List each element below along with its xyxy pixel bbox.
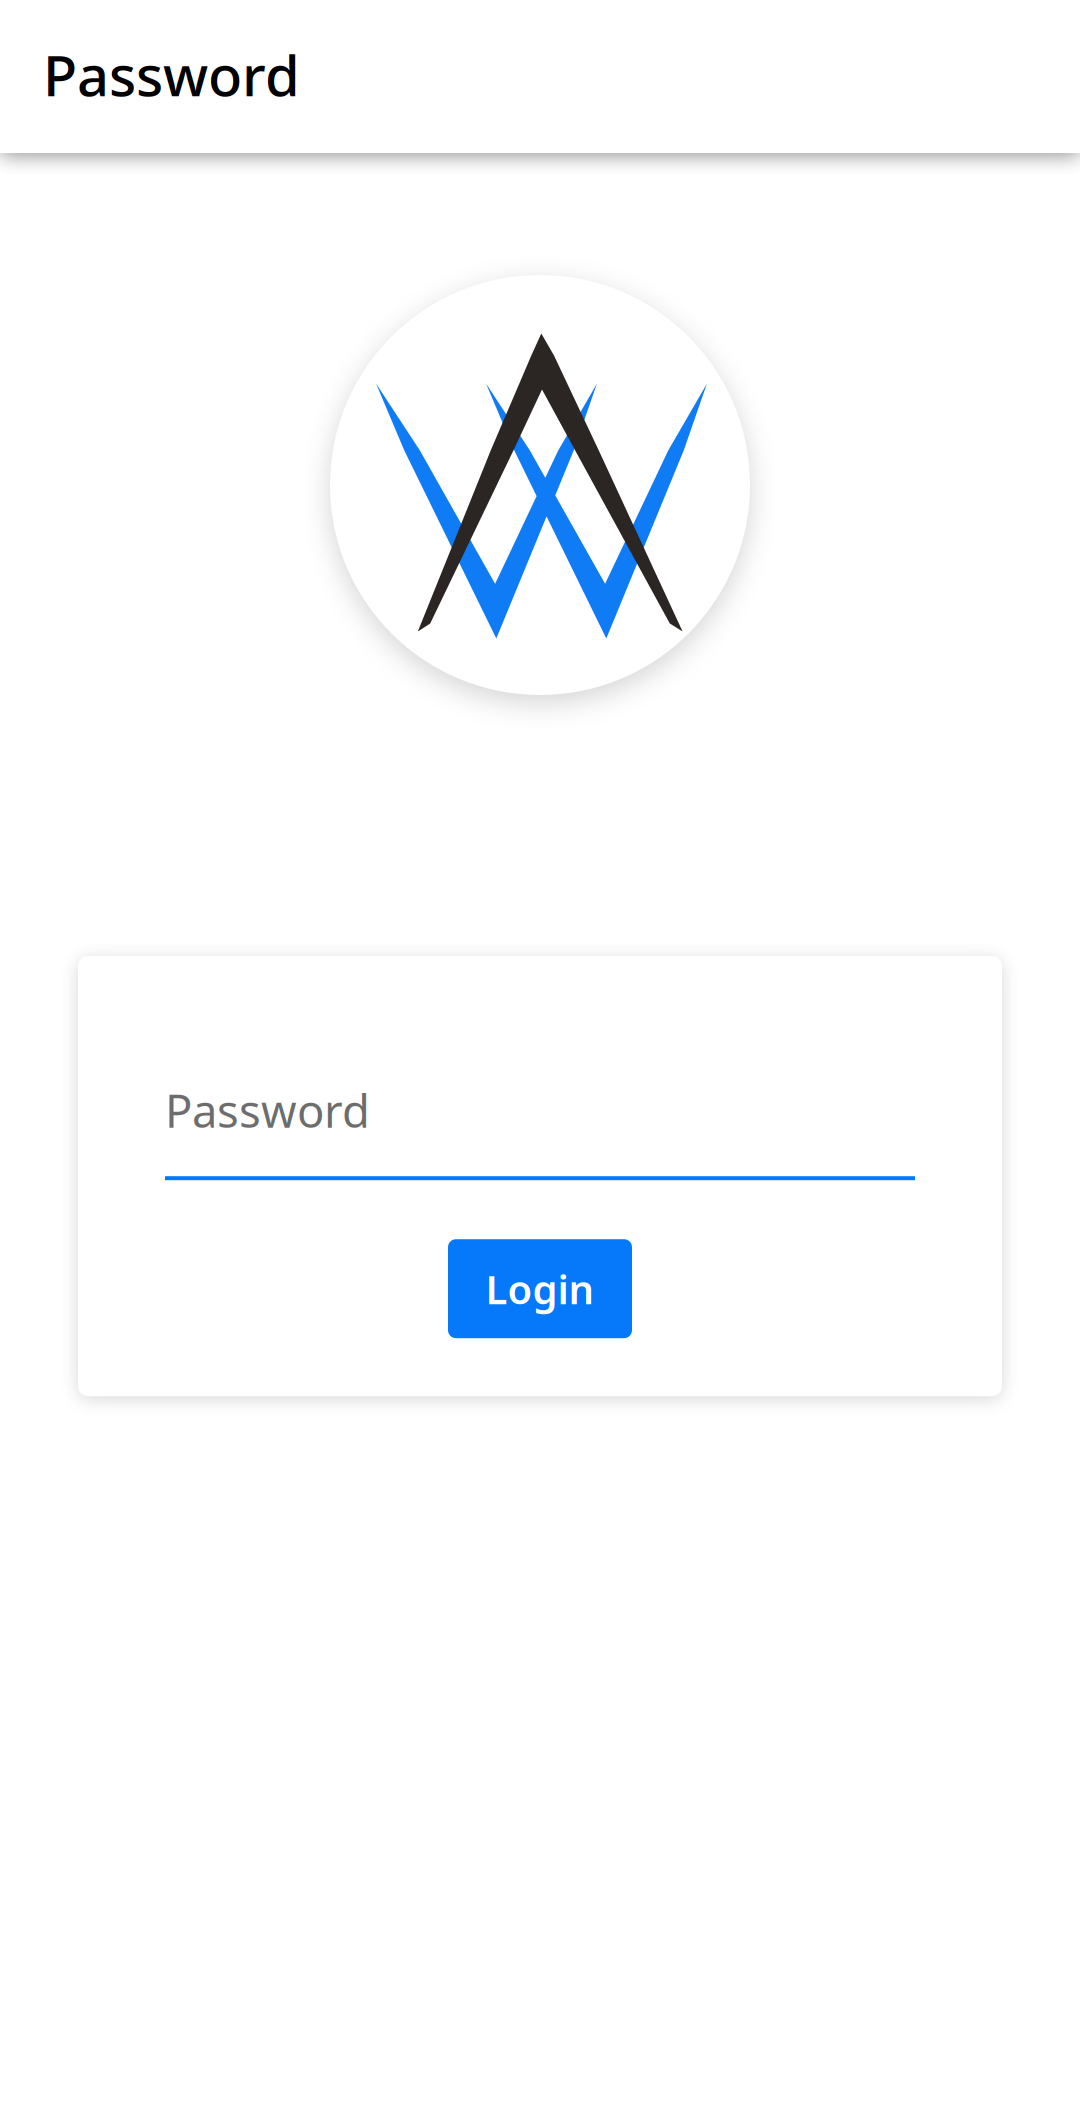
- button[interactable]: Login: [448, 1239, 632, 1338]
- staticText: Login: [485, 1262, 594, 1315]
- staticText: Password: [43, 37, 300, 112]
- staticText: Password: [165, 1080, 370, 1140]
